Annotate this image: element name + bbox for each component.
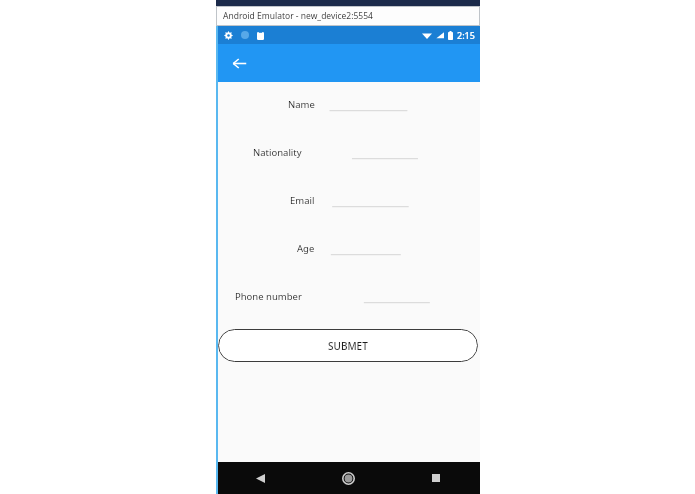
staticText: Phone number: [235, 290, 302, 303]
staticText: Age: [297, 242, 315, 255]
button[interactable]: Email: [216, 189, 480, 211]
button[interactable]: Age: [216, 237, 480, 259]
staticText: Nationality: [253, 146, 302, 159]
button[interactable]: Back: [216, 462, 304, 494]
staticText: Email: [290, 194, 315, 207]
button[interactable]: Phone number: [216, 285, 480, 307]
button[interactable]: Home: [304, 462, 392, 494]
staticText: Android Emulator - new_device2:5554: [223, 10, 373, 22]
button[interactable]: Recent apps: [392, 462, 480, 494]
button[interactable]: Name: [216, 93, 480, 115]
staticText: 2:15: [457, 29, 475, 41]
button[interactable]: SUBMET: [218, 329, 478, 362]
button[interactable]: Nationality: [216, 141, 480, 163]
button[interactable]: Back: [226, 50, 252, 76]
staticText: SUBMET: [328, 339, 368, 353]
staticText: Name: [288, 98, 315, 111]
